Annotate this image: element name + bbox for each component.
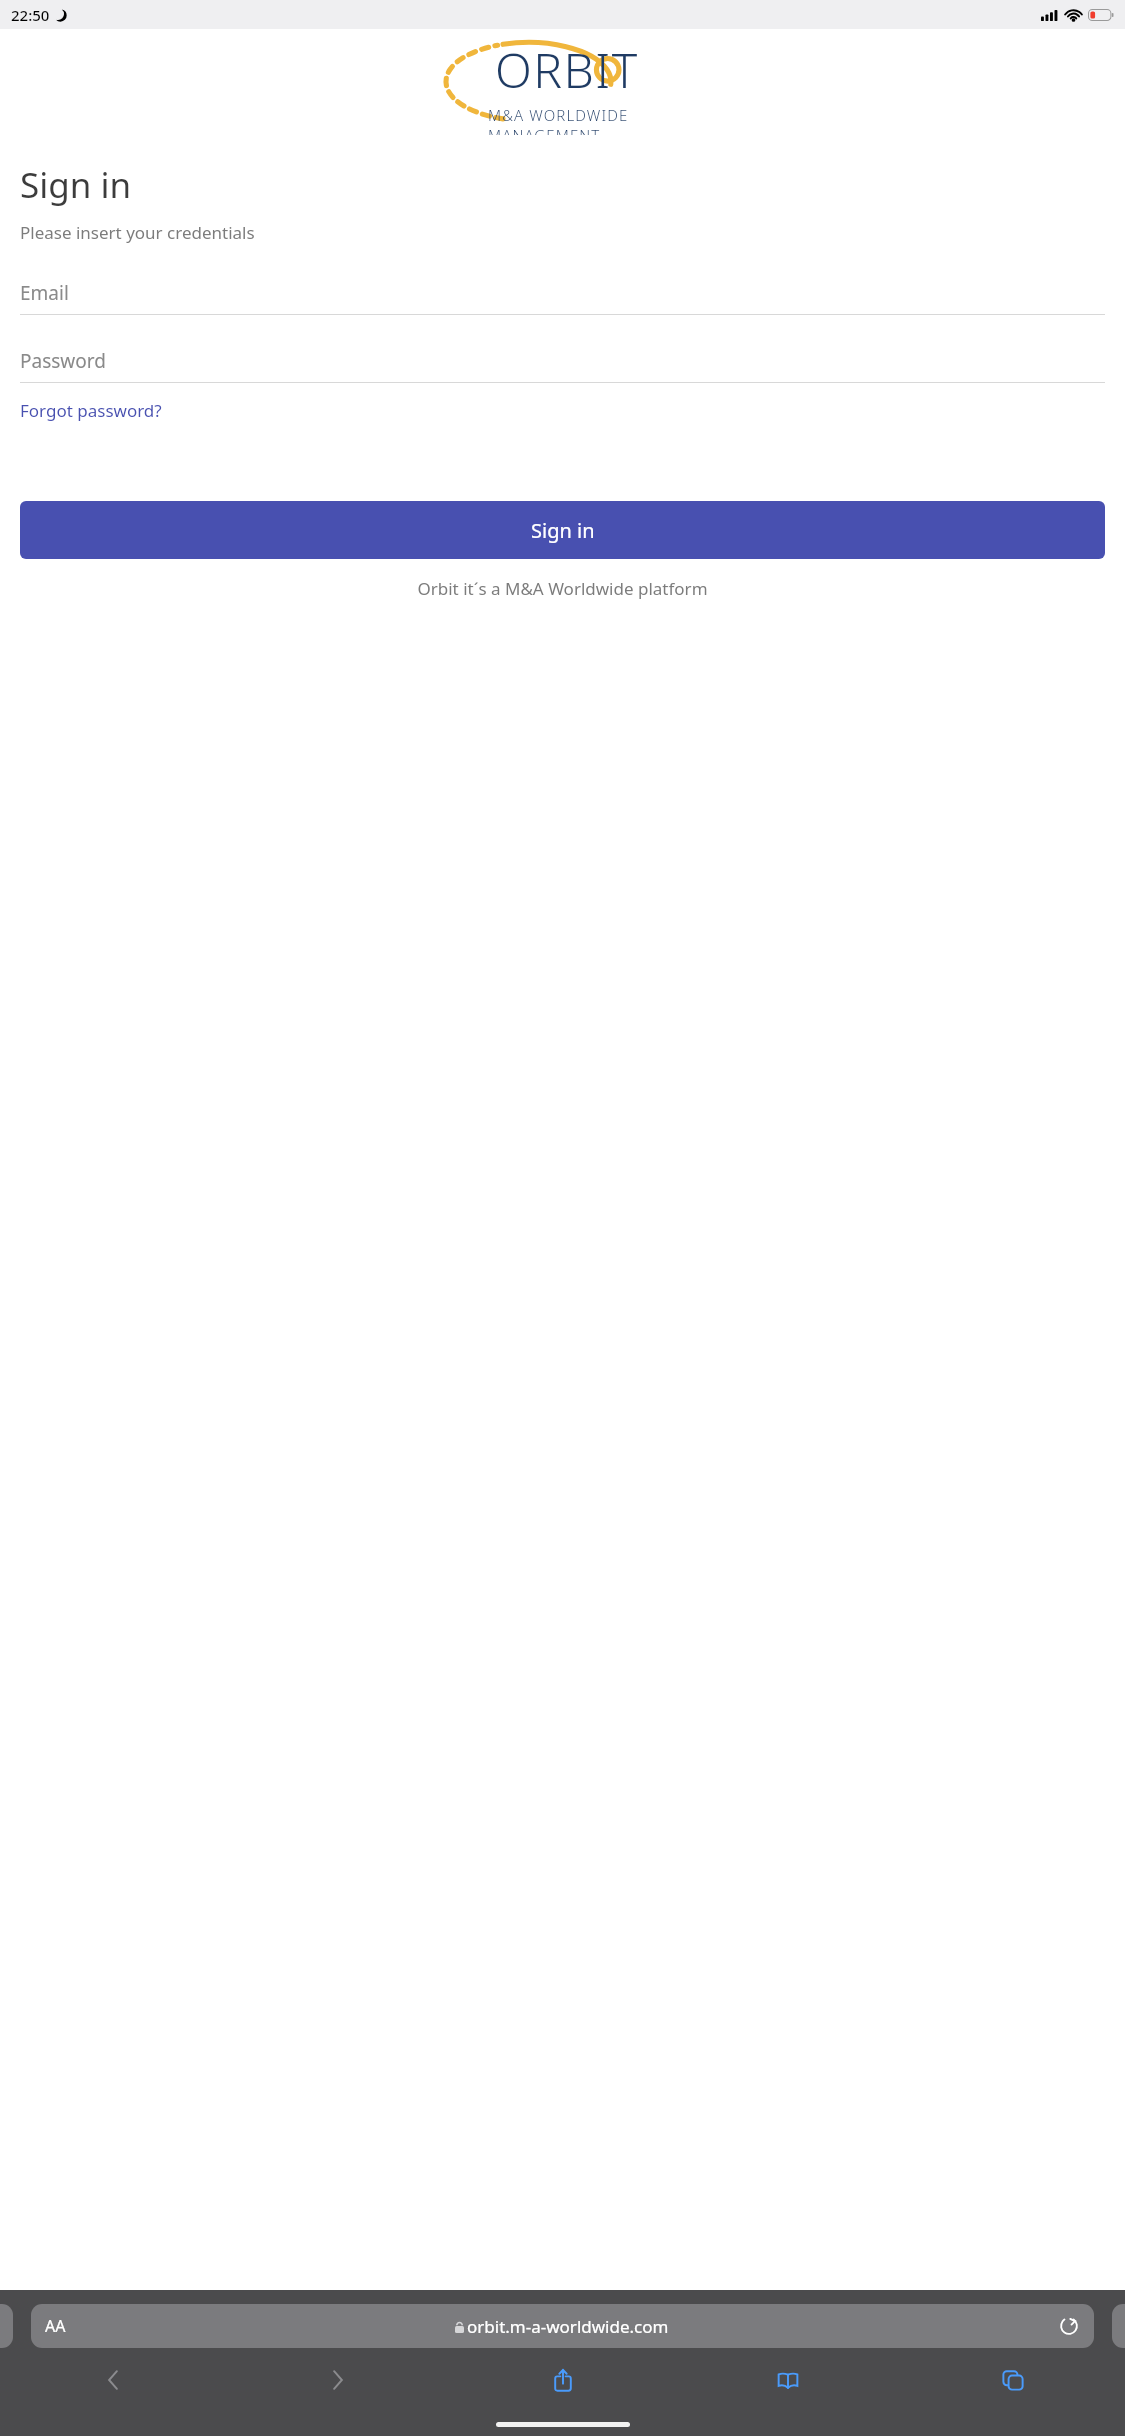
staticText: Forgot password? (20, 399, 162, 422)
staticText: Sign in (20, 161, 132, 209)
button[interactable]: Reload (1058, 2315, 1080, 2337)
button[interactable]: Back (0, 2358, 225, 2402)
button[interactable]: Password (20, 348, 1105, 383)
staticText: AA (45, 2315, 66, 2337)
button[interactable]: Bookmarks (675, 2358, 900, 2402)
staticText: Password (20, 348, 106, 374)
staticText: Sign in (531, 517, 595, 544)
button[interactable]: Next tab (1112, 2304, 1125, 2348)
button[interactable]: Forgot password? (20, 399, 162, 422)
button[interactable]: Tabs (900, 2358, 1125, 2402)
button[interactable]: Share (450, 2358, 675, 2402)
staticText: orbit.m-a-worldwide.com (467, 2315, 669, 2338)
staticText: Orbit it´s a M&A Worldwide platform (20, 577, 1105, 600)
button[interactable]: Forward (225, 2358, 450, 2402)
staticText: M&A WORLDWIDE (488, 105, 629, 125)
button[interactable]: Email (20, 280, 1105, 315)
staticText: Email (20, 280, 69, 306)
button[interactable]: Previous tab (0, 2304, 13, 2348)
staticText: MANAGEMENT (488, 125, 601, 135)
staticText: Please insert your credentials (20, 221, 255, 244)
staticText: 22:50 (11, 5, 50, 25)
button[interactable]: Sign in (20, 501, 1105, 559)
button[interactable]: AA (31, 2304, 1094, 2348)
staticText: ORBIT (495, 37, 639, 102)
